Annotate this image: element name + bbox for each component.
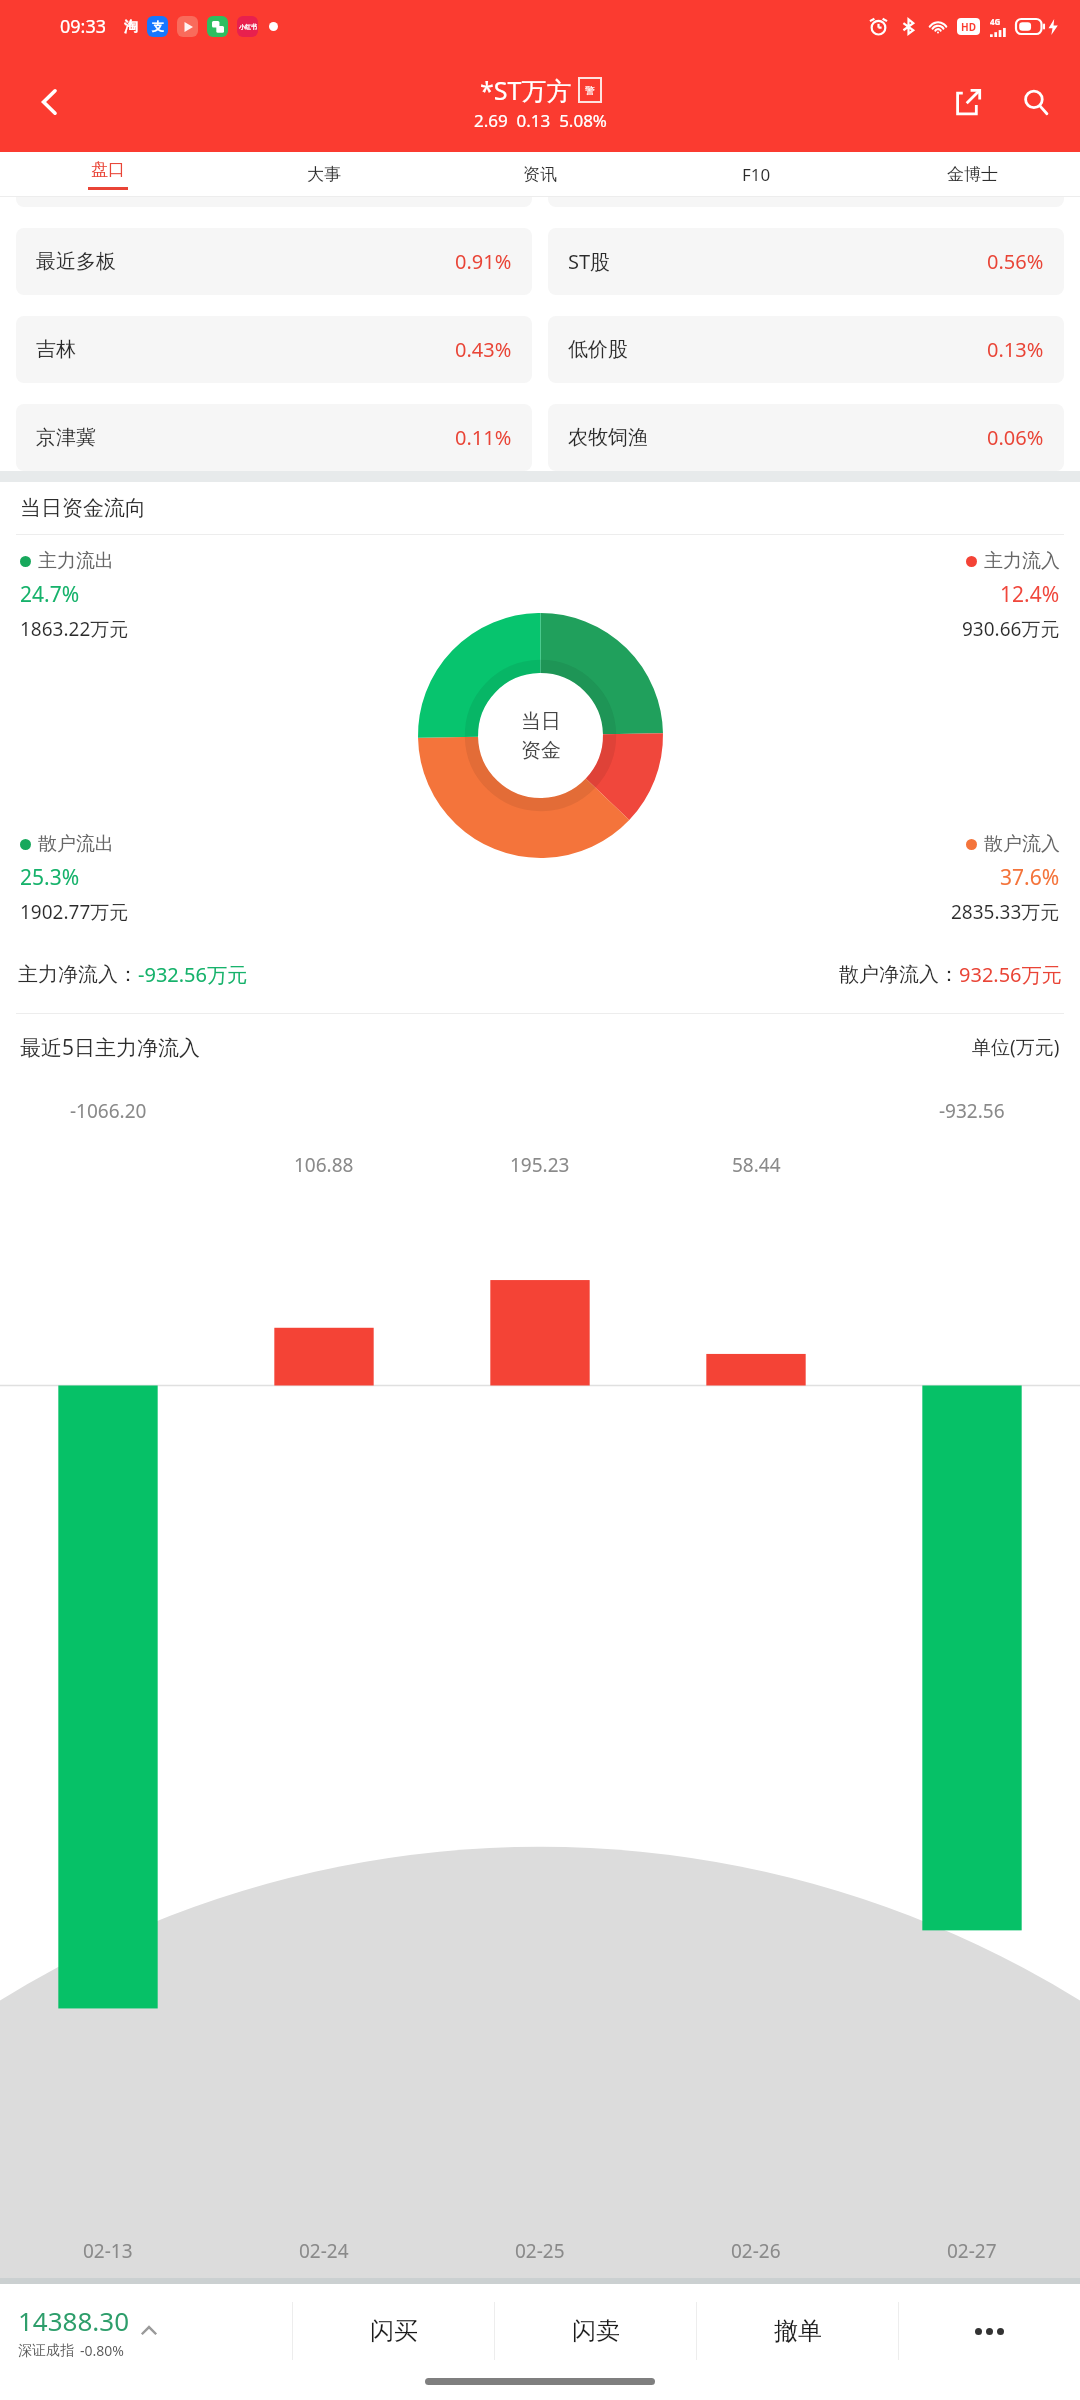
staticText: 农牧饲渔	[568, 425, 648, 450]
staticText: *ST万方	[480, 73, 572, 107]
button[interactable]: 闪卖	[495, 2284, 696, 2378]
button[interactable]: ST股	[548, 228, 1064, 295]
staticText: 02-24	[299, 2238, 349, 2264]
staticText: 02-13	[83, 2238, 133, 2264]
staticText: 2835.33万元	[951, 899, 1060, 925]
staticText: 25.3%	[20, 863, 80, 892]
staticText: 12.4%	[1000, 580, 1060, 609]
staticText: 主力净流入：	[18, 962, 138, 987]
staticText: 当日	[521, 709, 561, 734]
staticText: 1863.22万元	[20, 616, 129, 642]
staticText: 37.6%	[1000, 863, 1060, 892]
staticText: 最近多板	[36, 249, 116, 274]
staticText: -0.80%	[80, 2341, 124, 2360]
staticText: 资金	[521, 738, 561, 763]
staticText: 单位(万元)	[972, 1034, 1060, 1060]
button[interactable]: 撤单	[697, 2284, 898, 2378]
staticText: 散户流出	[38, 832, 114, 856]
staticText: -932.56	[939, 1098, 1005, 1124]
staticText: 吉林	[36, 337, 76, 362]
button[interactable]: 大事	[216, 152, 432, 197]
staticText: 小红书	[239, 23, 257, 31]
staticText: 106.88	[294, 1152, 354, 1178]
button[interactable]: 吉林	[16, 316, 532, 383]
staticText: 盘口	[91, 159, 125, 180]
staticText: 02-26	[731, 2238, 781, 2264]
button[interactable]: 资讯	[432, 152, 648, 197]
staticText: 金博士	[947, 164, 998, 185]
staticText: 主力流出	[38, 549, 114, 573]
staticText: HD	[961, 20, 976, 34]
staticText: -1066.20	[70, 1098, 147, 1124]
button[interactable]: 农牧饲渔	[548, 404, 1064, 471]
staticText: 撤单	[774, 2316, 822, 2346]
staticText: ST股	[568, 248, 611, 275]
staticText: 低价股	[568, 337, 628, 362]
staticText: 淘	[124, 18, 138, 36]
button[interactable]: Search	[1008, 74, 1064, 130]
staticText: 195.23	[510, 1152, 570, 1178]
staticText: 当日资金流向	[20, 495, 146, 521]
staticText: 930.66万元	[962, 616, 1060, 642]
button[interactable]: 14388.30	[0, 2284, 292, 2378]
button[interactable]: Back	[22, 74, 78, 130]
button[interactable]: 最近多板	[16, 228, 532, 295]
staticText: 支	[152, 19, 164, 34]
button[interactable]: 低价股	[548, 316, 1064, 383]
staticText: 0.43%	[455, 336, 512, 363]
button[interactable]: More	[899, 2284, 1080, 2378]
staticText: -932.56万元	[138, 961, 247, 988]
staticText: 京津冀	[36, 425, 96, 450]
staticText: 0.11%	[455, 424, 512, 451]
button[interactable]: 金博士	[864, 152, 1080, 197]
staticText: 散户流入	[984, 832, 1060, 856]
staticText: 14388.30	[18, 2303, 130, 2338]
staticText: 散户净流入：	[839, 962, 959, 987]
staticText: 932.56万元	[959, 961, 1062, 988]
staticText: 09:33	[60, 14, 107, 39]
staticText: 4G	[990, 16, 1001, 27]
staticText: 1902.77万元	[20, 899, 129, 925]
staticText: 闪卖	[572, 2316, 620, 2346]
staticText: 深证成指	[18, 2342, 74, 2360]
button[interactable]: 盘口	[0, 152, 216, 197]
staticText: 大事	[307, 164, 341, 185]
button[interactable]: 京津冀	[16, 404, 532, 471]
staticText: 最近5日主力净流入	[20, 1033, 201, 1062]
staticText: 0.13%	[987, 336, 1044, 363]
staticText: 闪买	[370, 2316, 418, 2346]
button[interactable]: F10	[648, 152, 864, 197]
staticText: 主力流入	[984, 549, 1060, 573]
button[interactable]: Share	[940, 74, 996, 130]
staticText: F10	[742, 163, 771, 186]
staticText: 02-25	[515, 2238, 565, 2264]
staticText: 0.56%	[987, 248, 1044, 275]
staticText: 警	[585, 84, 595, 97]
staticText: 2.69 0.13 5.08%	[474, 109, 607, 132]
button[interactable]: 闪买	[293, 2284, 494, 2378]
staticText: 02-27	[947, 2238, 997, 2264]
staticText: 0.91%	[455, 248, 512, 275]
staticText: 0.06%	[987, 424, 1044, 451]
staticText: 58.44	[732, 1152, 781, 1178]
staticText: 资讯	[523, 164, 557, 185]
staticText: 24.7%	[20, 580, 80, 609]
